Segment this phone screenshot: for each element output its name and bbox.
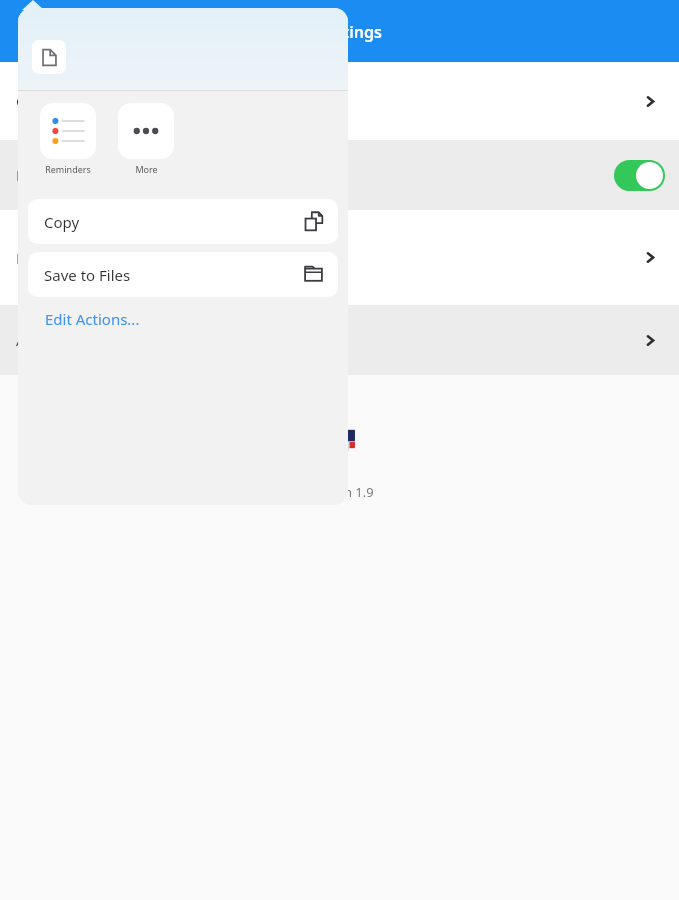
button[interactable]: Back	[4, 9, 48, 53]
staticText: Save to Files	[44, 265, 131, 285]
staticText: About	[16, 330, 59, 350]
staticText: Enable notifications	[16, 165, 155, 185]
staticText: Copy	[44, 212, 80, 232]
button[interactable]: Toggle on	[614, 160, 665, 191]
staticText: Edit Actions...	[45, 309, 140, 329]
staticText: Privacy	[16, 248, 67, 268]
button[interactable]: General	[0, 62, 679, 140]
button[interactable]: Copy	[28, 199, 338, 244]
staticText: Settings	[318, 21, 382, 43]
button[interactable]: Save to Files	[28, 252, 338, 297]
button[interactable]: Edit Actions...	[18, 297, 348, 341]
button[interactable]: More	[118, 103, 174, 171]
button[interactable]: Document preview	[32, 40, 66, 74]
button[interactable]: Enable notifications	[0, 140, 679, 210]
button[interactable]: Reminders	[40, 103, 96, 171]
button[interactable]: Privacy	[0, 210, 679, 305]
staticText: Reminders	[45, 163, 91, 175]
button[interactable]: About	[0, 305, 679, 375]
staticText: General	[16, 91, 72, 111]
staticText: Version 1.9	[306, 483, 374, 501]
staticText: More	[135, 163, 158, 175]
